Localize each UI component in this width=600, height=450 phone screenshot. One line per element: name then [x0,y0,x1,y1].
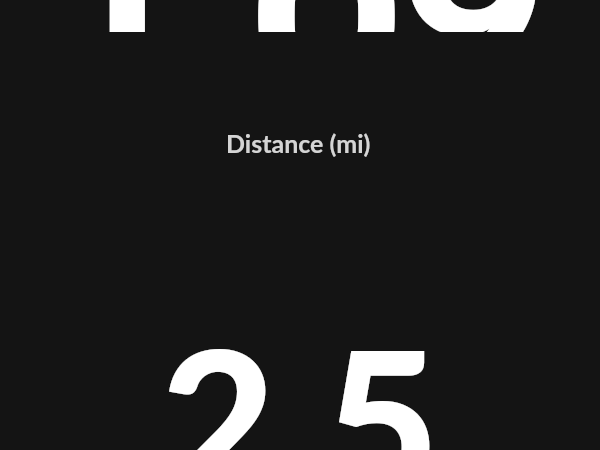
staticText: Distance (mi) [226,128,371,158]
staticText: 2.5 [160,299,440,450]
button[interactable]: 2.5 [0,299,600,450]
button[interactable]: 1.09 [0,0,600,175]
staticText: 1.09 [44,0,549,32]
